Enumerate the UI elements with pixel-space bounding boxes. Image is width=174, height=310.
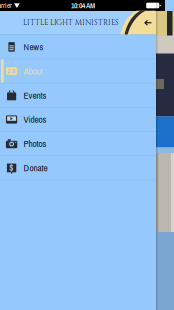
button[interactable]: About (0, 59, 156, 83)
staticText: LITTLE LIGHT MINISTRIES (23, 18, 119, 28)
button[interactable]: Events (0, 83, 156, 107)
button[interactable]: $ (0, 156, 156, 180)
button[interactable]: Photos (0, 132, 156, 155)
staticText: Videos (24, 113, 47, 126)
button[interactable]: Videos (0, 108, 156, 131)
staticText: News (24, 41, 44, 53)
button[interactable]: News (0, 35, 156, 59)
staticText: Carrier (0, 1, 12, 10)
staticText: Photos (24, 137, 47, 150)
staticText: Donate (24, 162, 48, 174)
staticText: Events (24, 89, 47, 102)
staticText: $ (9, 161, 14, 175)
staticText: 10:04 AM (71, 0, 95, 11)
staticText: About (24, 65, 43, 77)
button[interactable]: Back (141, 11, 155, 34)
